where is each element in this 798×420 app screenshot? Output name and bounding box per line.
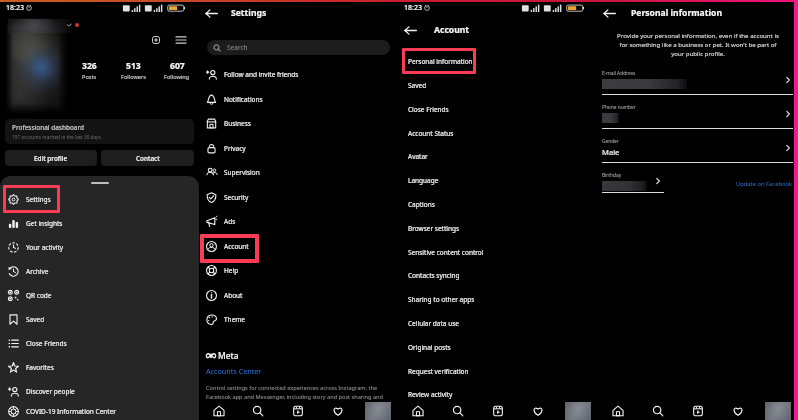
- button[interactable]: Update on Facebook: [736, 180, 793, 188]
- button[interactable]: Home: [598, 402, 638, 420]
- button[interactable]: Help: [199, 258, 398, 283]
- staticText: Followers: [121, 73, 146, 81]
- button[interactable]: Security: [199, 185, 398, 209]
- button[interactable]: Likes: [318, 402, 358, 420]
- staticText: Professional dashboard: [12, 123, 85, 132]
- button[interactable]: Avatar: [398, 145, 598, 168]
- staticText: Gender: [602, 138, 619, 145]
- button[interactable]: Supervision: [199, 160, 398, 185]
- staticText: 18:23: [6, 3, 24, 13]
- staticText: Favorites: [26, 363, 54, 372]
- button[interactable]: Ads: [199, 209, 398, 234]
- button[interactable]: Profile: [558, 402, 598, 420]
- staticText: Edit profile: [34, 154, 68, 163]
- button[interactable]: Sensitive content control: [398, 240, 598, 264]
- button[interactable]: E-mail Address: [598, 61, 798, 95]
- button[interactable]: Reels: [478, 402, 518, 420]
- button[interactable]: Personal information: [398, 49, 598, 73]
- button[interactable]: Profile: [758, 402, 798, 420]
- button[interactable]: Original posts: [398, 335, 598, 359]
- staticText: Contacts syncing: [408, 271, 460, 280]
- staticText: Cellular data use: [408, 319, 459, 328]
- button[interactable]: Reels: [678, 402, 718, 420]
- staticText: Account Status: [408, 129, 454, 138]
- staticText: Discover people: [26, 387, 75, 396]
- button[interactable]: Privacy: [199, 136, 398, 160]
- button[interactable]: Likes: [718, 402, 758, 420]
- button[interactable]: QR code: [0, 283, 199, 307]
- button[interactable]: Account: [199, 234, 398, 258]
- button[interactable]: Favorites: [0, 355, 199, 379]
- button[interactable]: Accounts Center: [206, 366, 262, 376]
- button[interactable]: COVID-19 Information Center: [0, 403, 199, 420]
- button[interactable]: New post: [149, 36, 165, 44]
- staticText: Archive: [26, 267, 49, 276]
- staticText: Control settings for connected experienc…: [206, 384, 391, 400]
- staticText: Saved: [408, 81, 427, 90]
- button[interactable]: Profile: [358, 402, 398, 420]
- staticText: Sensitive content control: [408, 248, 484, 257]
- button[interactable]: Home: [398, 402, 438, 420]
- staticText: Close Friends: [26, 339, 67, 348]
- staticText: Request verification: [408, 367, 469, 376]
- button[interactable]: Archive: [0, 259, 199, 283]
- button[interactable]: Get insights: [0, 211, 199, 235]
- button[interactable]: Follow and invite friends: [199, 62, 398, 87]
- button[interactable]: Discover people: [0, 379, 199, 403]
- button[interactable]: Browser settings: [398, 216, 598, 240]
- staticText: Review activity: [408, 390, 453, 399]
- staticText: COVID-19 Information Center: [26, 407, 117, 416]
- button[interactable]: Sharing to other apps: [398, 287, 598, 311]
- staticText: Settings: [26, 195, 51, 204]
- button[interactable]: Notifications: [199, 87, 398, 111]
- button[interactable]: Contact: [101, 150, 194, 166]
- staticText: Settings: [231, 7, 267, 19]
- staticText: E-mail Address: [602, 70, 636, 77]
- button[interactable]: Captions: [398, 192, 598, 216]
- button[interactable]: Likes: [518, 402, 558, 420]
- button[interactable]: Business: [199, 111, 398, 136]
- button[interactable]: Account Status: [398, 121, 598, 145]
- staticText: Provide your personal information, even …: [615, 31, 781, 58]
- button[interactable]: Theme: [199, 307, 398, 332]
- button[interactable]: Search: [207, 40, 390, 55]
- button[interactable]: Settings: [0, 187, 199, 211]
- staticText: Account: [434, 24, 470, 36]
- staticText: Account: [224, 242, 249, 251]
- button[interactable]: Saved: [0, 307, 199, 331]
- button[interactable]: Professional dashboard: [5, 119, 194, 144]
- staticText: Male: [602, 147, 620, 157]
- button[interactable]: Contacts syncing: [398, 264, 598, 287]
- button[interactable]: Back: [602, 6, 616, 20]
- staticText: Browser settings: [408, 224, 460, 233]
- button[interactable]: Menu: [173, 36, 189, 44]
- button[interactable]: Reels: [278, 402, 318, 420]
- staticText: Following: [164, 73, 190, 81]
- button[interactable]: Review activity: [398, 383, 598, 406]
- button[interactable]: Your activity: [0, 235, 199, 259]
- button[interactable]: Back: [403, 23, 417, 37]
- button[interactable]: Request verification: [398, 359, 598, 383]
- staticText: 157 accounts reached in the last 30 days…: [12, 134, 102, 140]
- staticText: Supervision: [224, 168, 260, 177]
- button[interactable]: Edit profile: [5, 150, 97, 166]
- button[interactable]: Phone number: [598, 95, 798, 129]
- button[interactable]: Close Friends: [0, 331, 199, 355]
- staticText: Follow and invite friends: [224, 70, 299, 79]
- staticText: Captions: [408, 200, 435, 209]
- button[interactable]: Saved: [398, 73, 598, 97]
- button[interactable]: Gender: [598, 129, 798, 163]
- button[interactable]: Search: [238, 402, 278, 420]
- button[interactable]: Back: [204, 6, 218, 20]
- button[interactable]: Home: [199, 402, 238, 420]
- button[interactable]: Search: [638, 402, 678, 420]
- button[interactable]: Cellular data use: [398, 311, 598, 335]
- staticText: Sharing to other apps: [408, 295, 475, 304]
- button[interactable]: Close Friends: [398, 97, 598, 121]
- button[interactable]: Search: [438, 402, 478, 420]
- button[interactable]: Language: [398, 168, 598, 192]
- staticText: Theme: [224, 315, 246, 324]
- button[interactable]: About: [199, 283, 398, 307]
- staticText: Help: [224, 266, 239, 275]
- staticText: Close Friends: [408, 105, 449, 114]
